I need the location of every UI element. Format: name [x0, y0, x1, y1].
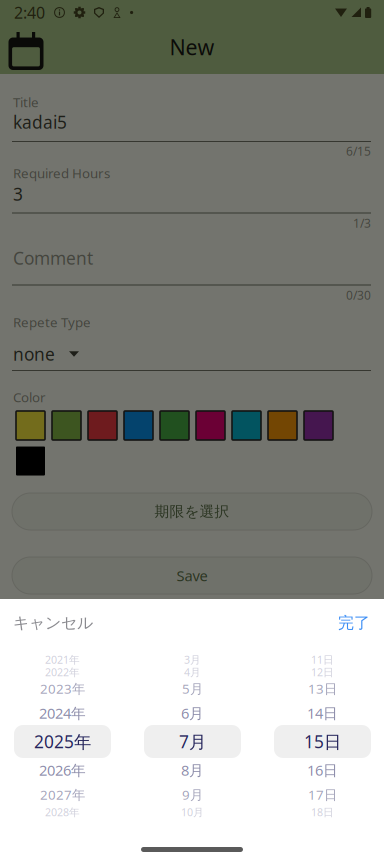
- staticText: 6/15: [346, 143, 371, 159]
- staticText: Repete Type: [13, 313, 91, 331]
- staticText: 18日: [311, 805, 334, 819]
- button[interactable]: Save: [12, 557, 372, 594]
- staticText: none: [13, 342, 55, 365]
- staticText: 3: [13, 182, 23, 205]
- staticText: 3月: [184, 652, 201, 667]
- staticText: Color: [13, 388, 46, 406]
- button[interactable]: Colour 1: [16, 411, 45, 440]
- staticText: Title: [13, 93, 39, 111]
- staticText: 5月: [182, 680, 203, 697]
- staticText: 2:40: [14, 2, 45, 23]
- button[interactable]: キャンセル: [0, 608, 133, 638]
- staticText: 10月: [181, 805, 204, 819]
- staticText: 14日: [307, 703, 338, 723]
- staticText: 2028年: [45, 805, 80, 819]
- button[interactable]: Colour 6: [196, 411, 225, 440]
- staticText: 2022年: [45, 665, 80, 679]
- staticText: 17日: [308, 786, 337, 803]
- staticText: 6月: [181, 703, 204, 723]
- button[interactable]: Colour 3: [88, 411, 117, 440]
- staticText: キャンセル: [13, 613, 93, 633]
- staticText: Comment: [13, 246, 93, 269]
- staticText: 0/30: [346, 287, 371, 303]
- staticText: kadai5: [13, 110, 67, 133]
- staticText: 2021年: [45, 652, 80, 667]
- staticText: 完了: [338, 613, 370, 633]
- staticText: 2025年: [34, 730, 91, 753]
- staticText: 1/3: [353, 215, 371, 231]
- staticText: 2023年: [40, 680, 85, 697]
- staticText: 9月: [182, 786, 203, 803]
- staticText: 12日: [311, 665, 334, 679]
- staticText: 11日: [311, 652, 334, 667]
- staticText: 8月: [181, 760, 204, 780]
- button[interactable]: 完了: [280, 608, 384, 638]
- staticText: Save: [176, 566, 207, 585]
- staticText: 13日: [308, 680, 337, 697]
- staticText: 2024年: [39, 703, 86, 723]
- button[interactable]: Colour 10: [16, 446, 45, 475]
- button[interactable]: Colour 2: [52, 411, 81, 440]
- staticText: 16日: [307, 760, 338, 780]
- button[interactable]: Colour 5: [160, 411, 189, 440]
- button[interactable]: Colour 7: [232, 411, 261, 440]
- button[interactable]: Calendar: [0, 25, 52, 77]
- staticText: 期限を選択: [154, 502, 229, 520]
- button[interactable]: 期限を選択: [12, 493, 372, 530]
- staticText: 7月: [179, 730, 206, 753]
- staticText: 2026年: [39, 760, 86, 780]
- staticText: Required Hours: [13, 164, 110, 182]
- button[interactable]: Colour 9: [304, 411, 333, 440]
- staticText: 2027年: [40, 786, 85, 803]
- staticText: New: [169, 33, 214, 61]
- button[interactable]: Colour 4: [124, 411, 153, 440]
- staticText: 15日: [304, 730, 341, 753]
- staticText: 4月: [184, 665, 201, 679]
- button[interactable]: Colour 8: [268, 411, 297, 440]
